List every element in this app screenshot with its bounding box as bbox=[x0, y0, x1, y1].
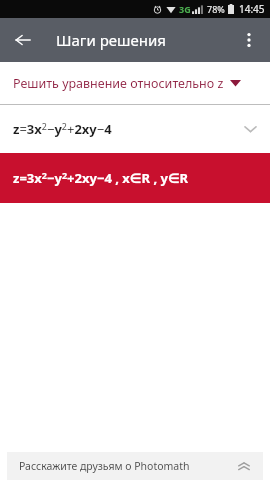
button[interactable]: More options bbox=[232, 23, 266, 57]
button[interactable]: Расскажите друзьям о Photomath bbox=[7, 452, 263, 480]
staticText: Расскажите друзьям о Photomath bbox=[19, 459, 190, 473]
button[interactable]: Решить уравнение относительно z bbox=[0, 62, 270, 104]
staticText: 14:45 bbox=[239, 2, 265, 16]
staticText: Решить уравнение относительно z bbox=[13, 75, 224, 92]
button[interactable]: z=3x2−y2+2xy−4 bbox=[0, 105, 270, 153]
staticText: Шаги решения bbox=[56, 30, 166, 50]
staticText: 3G bbox=[179, 3, 191, 15]
staticText: z=3x2−y2+2xy−4 bbox=[13, 120, 112, 138]
staticText: z=3x2−y2+2xy−4 , x∈R , y∈R bbox=[13, 169, 189, 187]
button[interactable]: z=3x2−y2+2xy−4 , x∈R , y∈R bbox=[0, 153, 270, 203]
button[interactable]: Back bbox=[6, 23, 40, 57]
staticText: 78% bbox=[207, 3, 225, 15]
